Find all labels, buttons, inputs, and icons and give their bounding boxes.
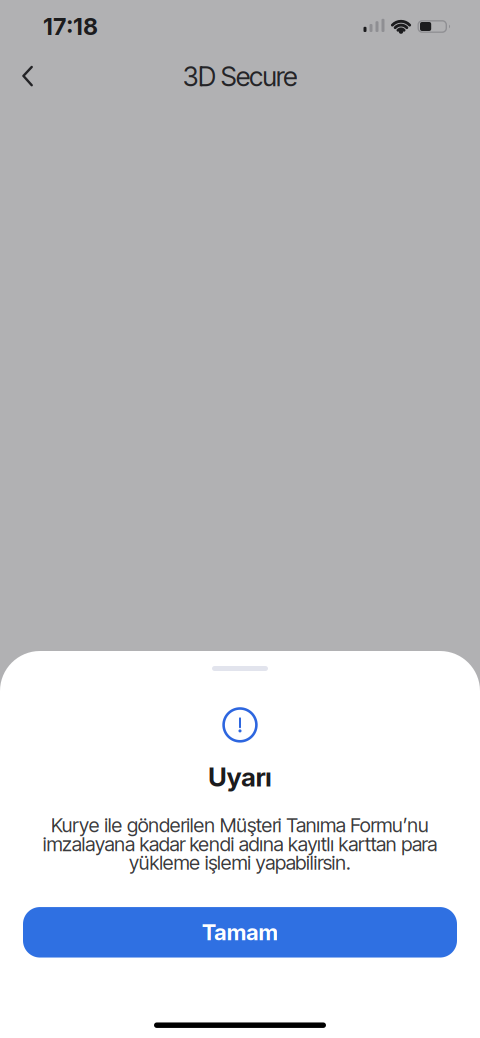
staticText: yükleme işlemi yapabilirsin. xyxy=(129,851,351,874)
staticText: imzalayana kadar kendi adına kayıtlı kar… xyxy=(43,832,437,856)
staticText: Kurye ile gönderilen Müşteri Tanıma Form… xyxy=(51,813,429,837)
button[interactable]: Back xyxy=(5,59,49,93)
staticText: Uyarı xyxy=(208,761,272,793)
staticText: Tamam xyxy=(202,919,278,946)
staticText: 3D Secure xyxy=(183,60,297,93)
button[interactable]: Tamam xyxy=(23,907,457,957)
staticText: 17:18 xyxy=(43,12,98,41)
